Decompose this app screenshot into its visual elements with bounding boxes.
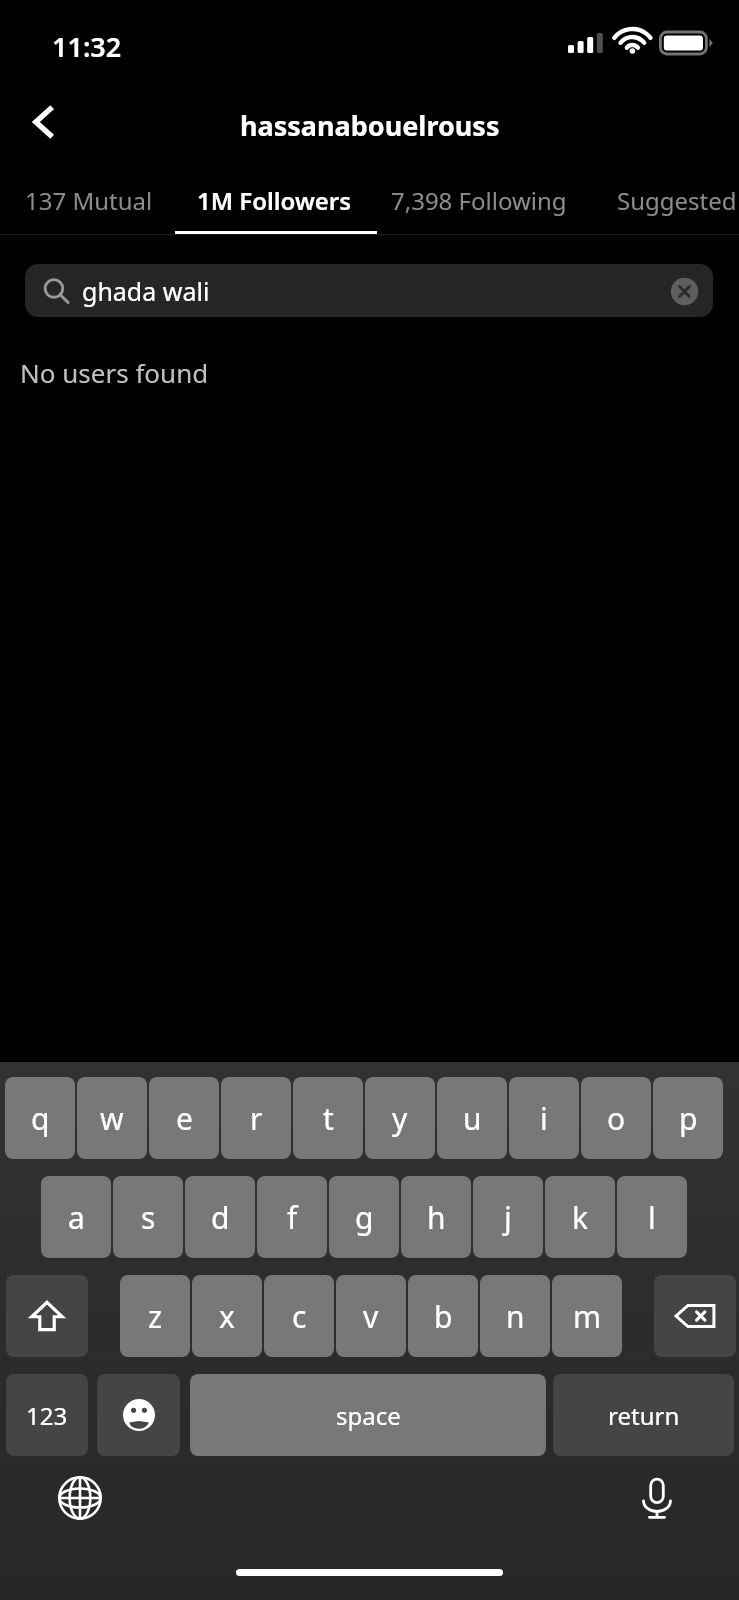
button[interactable]: return	[553, 1374, 734, 1456]
staticText: e	[176, 1098, 193, 1139]
button[interactable]: Shift	[6, 1275, 88, 1357]
staticText: w	[100, 1098, 124, 1139]
button[interactable]: f	[257, 1176, 327, 1258]
staticText: Suggested	[617, 184, 737, 217]
button[interactable]: h	[401, 1176, 471, 1258]
staticText: a	[68, 1197, 85, 1238]
button[interactable]: z	[120, 1275, 190, 1357]
staticText: 137 Mutual	[25, 184, 153, 217]
button[interactable]: Backspace	[654, 1275, 736, 1357]
staticText: q	[31, 1098, 50, 1139]
staticText: r	[250, 1098, 263, 1139]
staticText: space	[336, 1399, 401, 1432]
button[interactable]: n	[480, 1275, 550, 1357]
staticText: o	[607, 1098, 626, 1139]
button[interactable]: Back	[11, 90, 75, 154]
button[interactable]: g	[329, 1176, 399, 1258]
button[interactable]: a	[41, 1176, 111, 1258]
button[interactable]: Clear search	[667, 274, 701, 308]
button[interactable]: l	[617, 1176, 687, 1258]
staticText: 1M Followers	[197, 184, 352, 217]
staticText: 123	[26, 1399, 68, 1432]
staticText: j	[504, 1197, 512, 1238]
staticText: y	[392, 1098, 408, 1139]
staticText: u	[463, 1098, 482, 1139]
button[interactable]: q	[5, 1077, 75, 1159]
staticText: c	[292, 1296, 307, 1337]
staticText: k	[572, 1197, 589, 1238]
button[interactable]: r	[221, 1077, 291, 1159]
button[interactable]: s	[113, 1176, 183, 1258]
button[interactable]: y	[365, 1077, 435, 1159]
button[interactable]: v	[336, 1275, 406, 1357]
staticText: g	[355, 1197, 374, 1238]
staticText: v	[363, 1296, 379, 1337]
button[interactable]: e	[149, 1077, 219, 1159]
staticText: t	[323, 1098, 334, 1139]
staticText: l	[648, 1197, 656, 1238]
button[interactable]: j	[473, 1176, 543, 1258]
staticText: i	[540, 1098, 548, 1139]
button[interactable]: u	[437, 1077, 507, 1159]
staticText: n	[506, 1296, 525, 1337]
button[interactable]: 137 Mutual	[0, 168, 175, 234]
staticText: hassanabouelrouss	[240, 107, 500, 144]
button[interactable]: Emoji	[97, 1374, 180, 1456]
button[interactable]: m	[552, 1275, 622, 1357]
staticText: 11:32	[52, 28, 122, 65]
button[interactable]: w	[77, 1077, 147, 1159]
button[interactable]: i	[509, 1077, 579, 1159]
staticText: b	[434, 1296, 453, 1337]
button[interactable]: ghada wali	[25, 264, 713, 317]
staticText: s	[141, 1197, 156, 1238]
staticText: z	[148, 1296, 163, 1337]
staticText: p	[679, 1098, 698, 1139]
button[interactable]: Voice input	[625, 1466, 689, 1530]
button[interactable]: 123	[6, 1374, 88, 1456]
staticText: f	[287, 1197, 298, 1238]
button[interactable]: t	[293, 1077, 363, 1159]
staticText: No users found	[20, 355, 209, 390]
staticText: x	[219, 1296, 235, 1337]
button[interactable]: d	[185, 1176, 255, 1258]
staticText: m	[573, 1296, 602, 1337]
staticText: h	[427, 1197, 446, 1238]
button[interactable]: c	[264, 1275, 334, 1357]
button[interactable]: 1M Followers	[175, 168, 377, 234]
button[interactable]: p	[653, 1077, 723, 1159]
staticText: ghada wali	[82, 274, 210, 308]
button[interactable]: k	[545, 1176, 615, 1258]
button[interactable]: 7,398 Following	[377, 168, 599, 234]
button[interactable]: space	[190, 1374, 546, 1456]
staticText: return	[608, 1399, 680, 1432]
staticText: d	[211, 1197, 230, 1238]
button[interactable]: Switch keyboard	[48, 1466, 112, 1530]
button[interactable]: o	[581, 1077, 651, 1159]
button[interactable]: x	[192, 1275, 262, 1357]
staticText: 7,398 Following	[391, 184, 567, 217]
button[interactable]: Suggested	[599, 168, 739, 234]
button[interactable]: b	[408, 1275, 478, 1357]
